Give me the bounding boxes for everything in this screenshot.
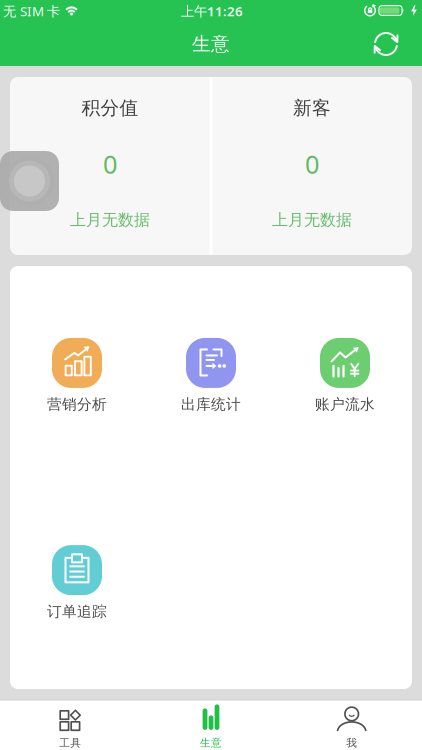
staticText: 营销分析 bbox=[47, 395, 107, 413]
button[interactable]: 出库统计 bbox=[151, 338, 271, 413]
button[interactable]: 营销分析 bbox=[17, 338, 137, 413]
staticText: 上午11:26 bbox=[181, 2, 243, 20]
button[interactable]: 刷新 bbox=[364, 22, 408, 66]
button[interactable]: 生意 bbox=[161, 703, 261, 750]
staticText: 新客 bbox=[293, 96, 331, 119]
staticText: 上月无数据 bbox=[70, 210, 150, 230]
staticText: 出库统计 bbox=[181, 395, 241, 413]
button[interactable]: 账户流水 bbox=[285, 338, 405, 413]
staticText: 0 bbox=[305, 147, 319, 181]
staticText: 无 SIM 卡 bbox=[3, 2, 60, 20]
staticText: 生意 bbox=[200, 736, 222, 749]
button[interactable]: 悬浮按钮 bbox=[0, 151, 59, 211]
staticText: 我 bbox=[346, 736, 357, 749]
staticText: 上月无数据 bbox=[272, 210, 352, 230]
staticText: 账户流水 bbox=[315, 395, 375, 413]
staticText: 生意 bbox=[192, 32, 230, 55]
staticText: 工具 bbox=[59, 736, 81, 749]
staticText: 订单追踪 bbox=[47, 603, 107, 621]
button[interactable]: 我 bbox=[302, 703, 402, 750]
button[interactable]: 订单追踪 bbox=[17, 545, 137, 621]
staticText: 0 bbox=[103, 147, 117, 181]
staticText: 积分值 bbox=[81, 96, 138, 119]
button[interactable]: 工具 bbox=[20, 703, 120, 750]
